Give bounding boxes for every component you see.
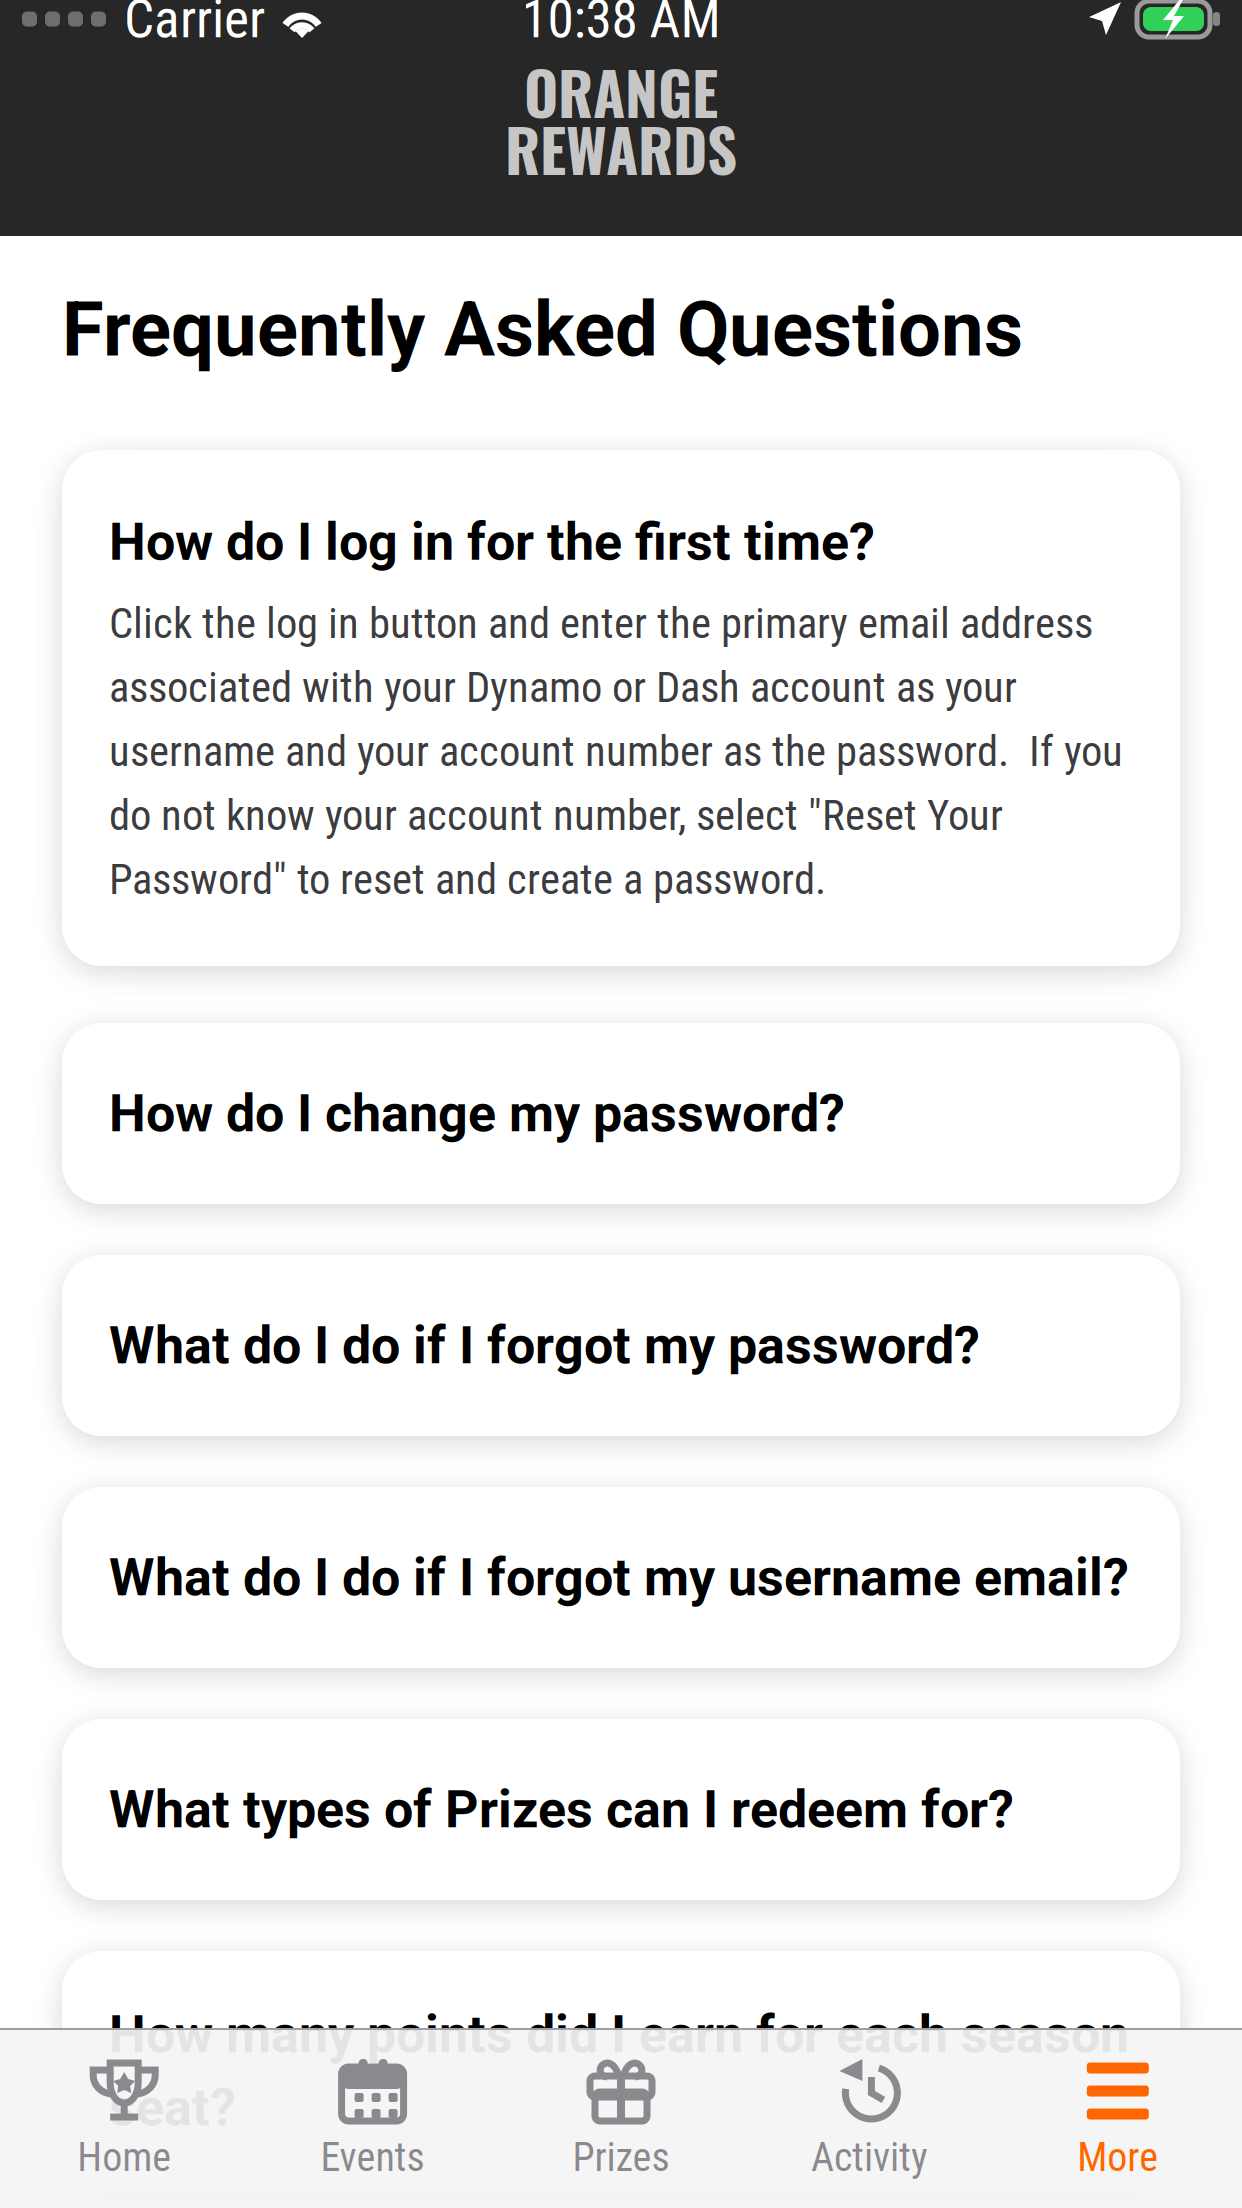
button[interactable]: What do I do if I forgot my password?: [62, 1255, 1180, 1436]
button[interactable]: More: [994, 2029, 1242, 2208]
staticText: Activity: [811, 2134, 928, 2181]
button[interactable]: Home: [0, 2029, 248, 2208]
button[interactable]: How do I log in for the first time?: [62, 450, 1180, 966]
button[interactable]: What do I do if I forgot my username ema…: [62, 1487, 1180, 1668]
button[interactable]: Prizes: [497, 2029, 745, 2208]
staticText: What types of Prizes can I redeem for?: [109, 1779, 1014, 1840]
staticText: ORANGE: [524, 48, 718, 135]
button[interactable]: Activity: [745, 2029, 994, 2208]
staticText: How do I change my password?: [109, 1083, 845, 1144]
staticText: What do I do if I forgot my password?: [109, 1315, 980, 1376]
staticText: Prizes: [572, 2134, 669, 2181]
button[interactable]: What types of Prizes can I redeem for?: [62, 1719, 1180, 1900]
staticText: How do I log in for the first time?: [109, 512, 875, 572]
staticText: More: [1077, 2134, 1158, 2181]
button[interactable]: How many points did I earn for each seas…: [62, 1951, 1180, 2191]
staticText: 10:38 AM: [521, 0, 720, 50]
staticText: Frequently Asked Questions: [62, 285, 1023, 374]
staticText: Carrier: [124, 0, 265, 50]
staticText: Click the log in button and enter the pr…: [109, 598, 1123, 904]
button[interactable]: Events: [248, 2029, 497, 2208]
staticText: Home: [77, 2134, 171, 2181]
staticText: What do I do if I forgot my username ema…: [109, 1547, 1129, 1608]
staticText: Events: [321, 2134, 425, 2181]
staticText: REWARDS: [505, 105, 737, 192]
button[interactable]: How do I change my password?: [62, 1023, 1180, 1204]
staticText: How many points did I earn for each seas…: [109, 2004, 1129, 2138]
